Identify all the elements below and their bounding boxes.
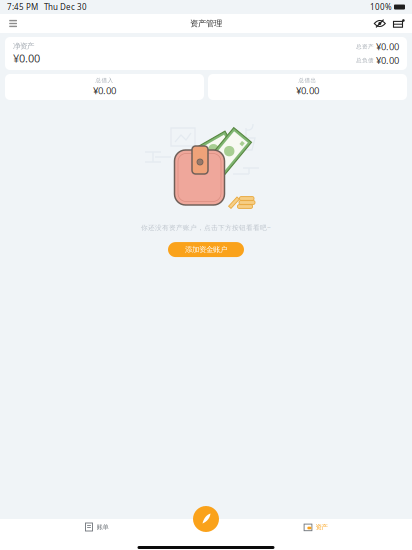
button[interactable]: 账单 [0, 516, 193, 538]
staticText: Thu Dec 30 [38, 2, 87, 12]
staticText: ¥0.00 [296, 84, 319, 97]
staticText: 净资产 [13, 41, 34, 51]
staticText: ¥0.00 [376, 54, 399, 67]
staticText: 账单 [96, 523, 108, 531]
staticText: ¥0.00 [376, 40, 399, 53]
staticText: 7:45 PM [7, 2, 38, 12]
button[interactable]: Accounts [389, 14, 409, 33]
staticText: 总借入 [95, 77, 113, 84]
staticText: 总资产 [356, 43, 374, 50]
staticText: ¥0.00 [93, 84, 116, 97]
button[interactable]: New record [193, 506, 219, 532]
button[interactable]: Menu [3, 14, 23, 33]
button[interactable]: Hide amounts [370, 14, 389, 33]
staticText: 资产管理 [190, 18, 222, 29]
button[interactable]: 添加资金账户 [168, 242, 244, 257]
staticText: 总借出 [298, 77, 316, 84]
staticText: 总负债 [356, 57, 374, 64]
staticText: 添加资金账户 [185, 245, 227, 254]
staticText: ¥0.00 [13, 51, 40, 66]
staticText: 你还没有资产账户，点击下方按钮看看吧~ [141, 223, 271, 232]
staticText: 资产 [315, 523, 327, 531]
staticText: 100% [370, 2, 392, 12]
button[interactable]: 资产 [219, 516, 412, 538]
